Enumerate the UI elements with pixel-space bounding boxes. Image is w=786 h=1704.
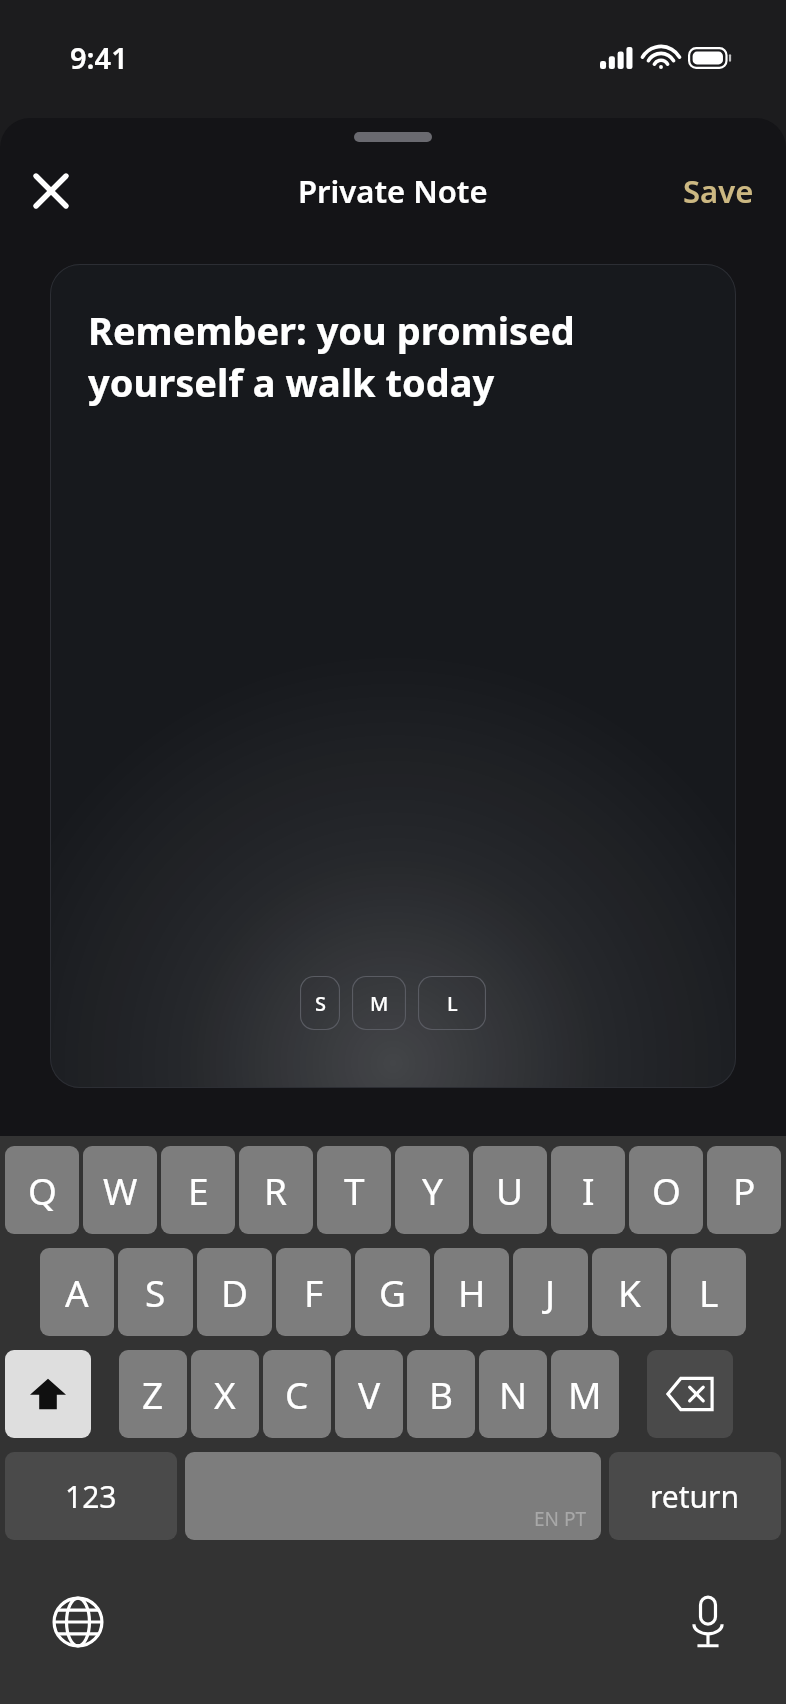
button[interactable]: I bbox=[551, 1146, 625, 1234]
staticText: V bbox=[358, 1369, 381, 1419]
button[interactable]: Shift bbox=[5, 1350, 91, 1438]
button[interactable]: N bbox=[479, 1350, 547, 1438]
button[interactable]: Dictation bbox=[672, 1586, 744, 1658]
button[interactable]: F bbox=[276, 1248, 351, 1336]
staticText: P bbox=[733, 1165, 756, 1215]
button[interactable]: W bbox=[83, 1146, 157, 1234]
staticText: T bbox=[344, 1165, 365, 1215]
staticText: A bbox=[65, 1267, 89, 1317]
button[interactable]: X bbox=[191, 1350, 259, 1438]
button[interactable]: M bbox=[551, 1350, 619, 1438]
staticText: F bbox=[304, 1267, 324, 1317]
staticText: Y bbox=[422, 1165, 443, 1215]
staticText: R bbox=[264, 1165, 288, 1215]
staticText: S bbox=[315, 990, 326, 1017]
button[interactable]: Save bbox=[669, 162, 768, 220]
staticText: K bbox=[618, 1267, 641, 1317]
staticText: M bbox=[568, 1369, 602, 1419]
staticText: O bbox=[652, 1165, 681, 1215]
button[interactable]: Y bbox=[395, 1146, 469, 1234]
staticText: return bbox=[650, 1476, 740, 1517]
button[interactable]: B bbox=[407, 1350, 475, 1438]
staticText: M bbox=[370, 990, 389, 1017]
staticText: L bbox=[447, 990, 458, 1017]
staticText: B bbox=[429, 1369, 454, 1419]
staticText: E bbox=[188, 1165, 209, 1215]
button[interactable]: Q bbox=[5, 1146, 79, 1234]
button[interactable]: U bbox=[473, 1146, 547, 1234]
staticText: L bbox=[699, 1267, 719, 1317]
staticText: U bbox=[496, 1165, 524, 1215]
button[interactable]: Backspace bbox=[647, 1350, 733, 1438]
button[interactable]: Z bbox=[119, 1350, 187, 1438]
button[interactable]: Space bbox=[185, 1452, 601, 1540]
button[interactable]: K bbox=[592, 1248, 667, 1336]
button[interactable]: L bbox=[418, 976, 486, 1030]
button[interactable]: V bbox=[335, 1350, 403, 1438]
staticText: G bbox=[379, 1267, 406, 1317]
button[interactable]: L bbox=[671, 1248, 746, 1336]
staticText: W bbox=[103, 1165, 138, 1215]
button[interactable]: D bbox=[197, 1248, 272, 1336]
staticText: Remember: you promised yourself a walk t… bbox=[88, 304, 706, 408]
button[interactable]: Close bbox=[22, 162, 80, 220]
button[interactable]: E bbox=[161, 1146, 235, 1234]
staticText: EN PT bbox=[534, 1506, 587, 1532]
staticText: D bbox=[221, 1267, 249, 1317]
button[interactable]: H bbox=[434, 1248, 509, 1336]
button[interactable]: return bbox=[609, 1452, 781, 1540]
staticText: S bbox=[145, 1267, 166, 1317]
button[interactable]: R bbox=[239, 1146, 313, 1234]
staticText: Q bbox=[28, 1165, 57, 1215]
button[interactable]: T bbox=[317, 1146, 391, 1234]
button[interactable]: 123 bbox=[5, 1452, 177, 1540]
button[interactable]: Change keyboard bbox=[42, 1586, 114, 1658]
button[interactable]: S bbox=[300, 976, 340, 1030]
button[interactable]: A bbox=[40, 1248, 114, 1336]
staticText: 9:41 bbox=[70, 38, 128, 77]
staticText: N bbox=[499, 1369, 528, 1419]
staticText: Save bbox=[683, 170, 754, 212]
button[interactable]: O bbox=[629, 1146, 703, 1234]
staticText: J bbox=[545, 1267, 556, 1317]
staticText: H bbox=[458, 1267, 486, 1317]
staticText: X bbox=[214, 1369, 236, 1419]
button[interactable]: P bbox=[707, 1146, 781, 1234]
staticText: Private Note bbox=[298, 170, 488, 212]
button[interactable]: C bbox=[263, 1350, 331, 1438]
button[interactable]: S bbox=[118, 1248, 193, 1336]
staticText: I bbox=[582, 1165, 595, 1215]
staticText: Z bbox=[142, 1369, 164, 1419]
staticText: C bbox=[285, 1369, 309, 1419]
staticText: 123 bbox=[65, 1476, 117, 1517]
button[interactable]: M bbox=[352, 976, 406, 1030]
button[interactable]: G bbox=[355, 1248, 430, 1336]
button[interactable]: J bbox=[513, 1248, 588, 1336]
